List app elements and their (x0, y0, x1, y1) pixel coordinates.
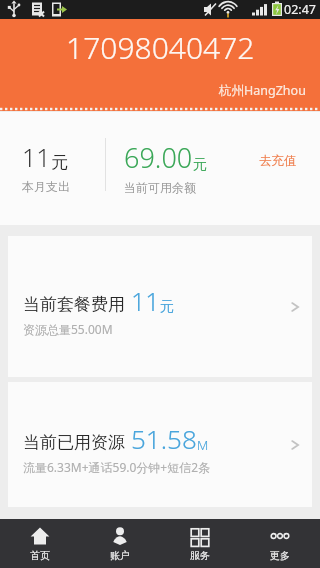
staticText: 17098040472 (66, 27, 255, 68)
button[interactable]: 账户 (80, 519, 160, 568)
staticText: 元 (51, 152, 68, 173)
staticText: 元 (193, 156, 207, 174)
staticText: 本月支出 (22, 179, 70, 194)
staticText: 51.58 (131, 421, 197, 456)
staticText: 资源总量55.00M (23, 321, 113, 337)
staticText: 11 (131, 284, 160, 318)
button[interactable]: 去充值 (255, 149, 301, 173)
staticText: 69.00 (124, 139, 193, 176)
staticText: 当前已用资源 (23, 432, 125, 453)
staticText: 更多 (270, 549, 290, 562)
staticText: 账户 (110, 549, 130, 562)
button[interactable]: 更多 (240, 519, 320, 568)
staticText: 11 (22, 140, 51, 174)
staticText: 去充值 (259, 153, 297, 169)
staticText: 当前可用余额 (124, 180, 196, 195)
button[interactable]: 当前已用资源 (8, 382, 312, 507)
staticText: 元 (160, 298, 174, 316)
staticText: 02:47 (284, 1, 316, 18)
staticText: M (197, 436, 209, 454)
staticText: 杭州HangZhou (219, 82, 306, 99)
button[interactable]: 服务 (160, 519, 240, 568)
button[interactable]: 当前套餐费用 (8, 236, 312, 377)
staticText: 流量6.33M+通话59.0分钟+短信2条 (23, 459, 211, 475)
staticText: 服务 (190, 549, 210, 562)
button[interactable]: 首页 (0, 519, 80, 568)
staticText: 首页 (30, 549, 50, 562)
staticText: 当前套餐费用 (23, 294, 125, 315)
